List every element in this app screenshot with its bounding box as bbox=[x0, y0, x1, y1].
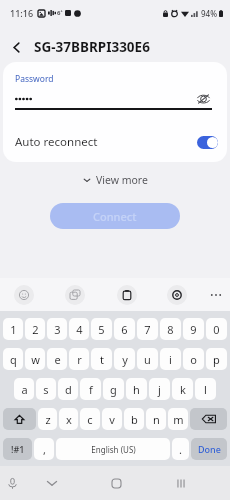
staticText: 9 bbox=[190, 322, 197, 337]
staticText: 1 bbox=[10, 322, 17, 337]
button[interactable]: f bbox=[80, 378, 101, 400]
button[interactable]: 6 bbox=[114, 318, 135, 340]
button[interactable]: Emoji bbox=[14, 285, 34, 305]
button[interactable]: 3 bbox=[47, 318, 67, 340]
button[interactable]: Settings bbox=[167, 285, 187, 305]
staticText: SG-37BBRPI330E6 bbox=[34, 38, 150, 56]
button[interactable]: Show password bbox=[195, 92, 212, 105]
button[interactable]: n bbox=[146, 408, 166, 430]
staticText: y bbox=[122, 352, 128, 367]
button[interactable]: a bbox=[14, 378, 34, 400]
staticText: k bbox=[180, 382, 186, 397]
staticText: a bbox=[21, 382, 28, 397]
button[interactable]: x bbox=[59, 408, 78, 430]
button[interactable]: v bbox=[102, 408, 122, 430]
staticText: . bbox=[179, 442, 182, 457]
staticText: r bbox=[77, 352, 82, 367]
staticText: g bbox=[110, 382, 117, 397]
button[interactable]: g bbox=[103, 378, 124, 400]
staticText: View more bbox=[96, 173, 148, 187]
staticText: u bbox=[144, 352, 151, 367]
staticText: 6 bbox=[121, 322, 128, 337]
button[interactable]: Recent apps bbox=[165, 466, 197, 500]
button[interactable]: Connect bbox=[50, 203, 180, 229]
button[interactable]: 8 bbox=[160, 318, 181, 340]
button[interactable]: j bbox=[149, 378, 170, 400]
staticText: d bbox=[65, 382, 72, 397]
staticText: q bbox=[10, 352, 17, 367]
button[interactable]: i bbox=[160, 348, 181, 370]
button[interactable]: u bbox=[137, 348, 158, 370]
button[interactable]: Auto reconnect bbox=[3, 110, 227, 162]
button[interactable]: View more bbox=[77, 170, 154, 190]
staticText: t bbox=[100, 352, 104, 367]
staticText: Done bbox=[198, 443, 221, 455]
staticText: o bbox=[190, 352, 197, 367]
staticText: Auto reconnect bbox=[15, 134, 98, 150]
button[interactable]: 1 bbox=[3, 318, 23, 340]
button[interactable]: c bbox=[80, 408, 100, 430]
button[interactable]: Voice input bbox=[0, 466, 28, 500]
button[interactable]: b bbox=[124, 408, 144, 430]
button[interactable]: 9 bbox=[183, 318, 204, 340]
staticText: s bbox=[43, 382, 49, 397]
staticText: 2 bbox=[32, 322, 39, 337]
button[interactable]: Hide keyboard bbox=[36, 466, 68, 500]
button[interactable]: More options bbox=[206, 285, 226, 305]
button[interactable]: 2 bbox=[25, 318, 45, 340]
button[interactable]: z bbox=[38, 408, 57, 430]
button[interactable]: Stickers bbox=[65, 285, 85, 305]
staticText: j bbox=[158, 382, 161, 397]
button[interactable]: r bbox=[69, 348, 89, 370]
staticText: 7 bbox=[144, 322, 151, 337]
staticText: , bbox=[43, 442, 46, 457]
button[interactable]: m bbox=[168, 408, 188, 430]
button[interactable]: Shift bbox=[3, 408, 36, 430]
button[interactable]: 0 bbox=[206, 318, 227, 340]
staticText: 3 bbox=[54, 322, 61, 337]
button[interactable]: e bbox=[47, 348, 67, 370]
button[interactable]: w bbox=[25, 348, 45, 370]
staticText: z bbox=[45, 412, 51, 427]
button[interactable]: k bbox=[172, 378, 193, 400]
staticText: b bbox=[131, 412, 138, 427]
staticText: 0 bbox=[213, 322, 220, 337]
button[interactable]: o bbox=[183, 348, 204, 370]
staticText: m bbox=[173, 412, 184, 427]
staticText: v bbox=[109, 412, 115, 427]
staticText: p bbox=[213, 352, 220, 367]
button[interactable]: 4 bbox=[69, 318, 89, 340]
button[interactable]: , bbox=[34, 438, 54, 460]
button[interactable]: Back bbox=[0, 32, 32, 62]
button[interactable]: p bbox=[206, 348, 227, 370]
staticText: English (US) bbox=[91, 444, 136, 455]
staticText: i bbox=[169, 352, 172, 367]
button[interactable]: q bbox=[3, 348, 23, 370]
staticText: 4 bbox=[76, 322, 83, 337]
button[interactable]: Backspace bbox=[190, 408, 227, 430]
button[interactable]: s bbox=[36, 378, 56, 400]
staticText: w bbox=[31, 352, 40, 367]
button[interactable]: h bbox=[126, 378, 147, 400]
button[interactable]: !#1 bbox=[3, 438, 32, 460]
button[interactable]: . bbox=[172, 438, 189, 460]
staticText: !#1 bbox=[11, 443, 25, 455]
staticText: 6⁺ bbox=[57, 9, 63, 17]
button[interactable]: Clipboard bbox=[117, 285, 137, 305]
button[interactable]: Done bbox=[191, 438, 227, 460]
button[interactable]: English (US) bbox=[56, 438, 170, 460]
button[interactable]: d bbox=[58, 378, 78, 400]
button[interactable]: l bbox=[195, 378, 216, 400]
staticText: 8 bbox=[167, 322, 174, 337]
button[interactable]: y bbox=[114, 348, 135, 370]
staticText: c bbox=[87, 412, 93, 427]
button[interactable]: Home bbox=[100, 466, 132, 500]
staticText: n bbox=[153, 412, 160, 427]
staticText: h bbox=[133, 382, 140, 397]
button[interactable]: 7 bbox=[137, 318, 158, 340]
staticText: 94% bbox=[201, 8, 217, 19]
button[interactable]: 5 bbox=[91, 318, 112, 340]
staticText: 5 bbox=[98, 322, 105, 337]
button[interactable]: t bbox=[91, 348, 112, 370]
staticText: Connect bbox=[93, 209, 137, 224]
